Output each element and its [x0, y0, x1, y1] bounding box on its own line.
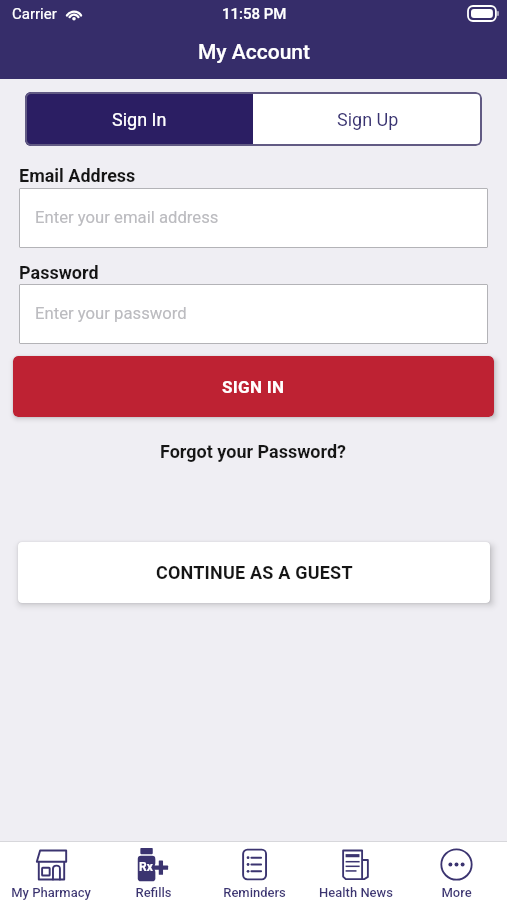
staticText: More — [441, 885, 472, 900]
button[interactable]: Sign In — [25, 92, 253, 146]
staticText: Enter your password — [35, 304, 187, 324]
button[interactable]: My Pharmacy — [0, 842, 102, 900]
button[interactable]: More — [406, 842, 507, 900]
button[interactable]: Forgot your Password? — [160, 441, 347, 462]
button[interactable]: Sign Up — [253, 92, 482, 146]
staticText: Health News — [319, 885, 393, 900]
button[interactable]: Rx — [102, 842, 204, 900]
staticText: Sign In — [112, 109, 167, 130]
staticText: Sign Up — [337, 109, 399, 130]
staticText: Reminders — [223, 885, 286, 900]
button[interactable]: Enter your email address — [19, 188, 488, 248]
button[interactable]: Enter your password — [19, 284, 488, 344]
staticText: Enter your email address — [35, 208, 219, 228]
staticText: My Account — [198, 40, 310, 65]
staticText: Password — [19, 262, 99, 283]
staticText: Refills — [135, 885, 172, 900]
staticText: SIGN IN — [222, 377, 285, 397]
staticText: Carrier — [12, 5, 57, 23]
staticText: Email Address — [19, 165, 136, 186]
staticText: Rx — [139, 860, 153, 874]
staticText: 11:58 PM — [222, 5, 287, 23]
staticText: My Pharmacy — [11, 885, 91, 900]
staticText: CONTINUE AS A GUEST — [156, 562, 353, 583]
button[interactable]: SIGN IN — [13, 356, 494, 417]
button[interactable]: CONTINUE AS A GUEST — [18, 542, 490, 603]
button[interactable]: Health News — [305, 842, 406, 900]
button[interactable]: Reminders — [204, 842, 305, 900]
